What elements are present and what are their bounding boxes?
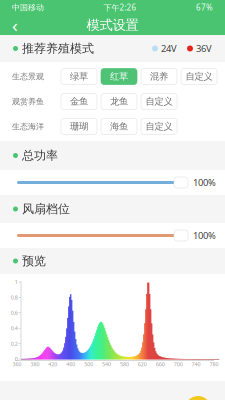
staticText: 1 [15, 278, 18, 286]
button[interactable]: 自定义 [141, 93, 177, 109]
staticText: 金鱼 [70, 96, 88, 107]
staticText: 模式设置 [86, 17, 138, 33]
staticText: 生态海洋 [12, 122, 44, 131]
staticText: 红草 [110, 71, 128, 82]
staticText: 生态景观 [12, 72, 44, 81]
staticText: 700 [174, 361, 183, 368]
staticText: 总功率 [22, 148, 58, 163]
staticText: 绿草 [70, 71, 88, 82]
staticText: 0.4 [11, 325, 18, 332]
staticText: 下午2:26 [103, 2, 136, 13]
staticText: 660 [156, 361, 165, 368]
staticText: 预览 [22, 254, 46, 268]
staticText: 龙鱼 [110, 96, 128, 107]
staticText: 自定义 [145, 96, 172, 107]
staticText: 0.6 [11, 309, 18, 316]
button[interactable]: 珊瑚 [61, 118, 97, 134]
staticText: 420 [48, 361, 57, 368]
staticText: 0 [15, 355, 18, 363]
staticText: 67% [196, 2, 213, 13]
staticText: 推荐养殖模式 [22, 41, 94, 56]
button[interactable]: 绿草 [61, 68, 97, 84]
button[interactable]: 自定义 [181, 68, 217, 84]
button[interactable]: 混养 [141, 68, 177, 84]
staticText: 24V [161, 42, 177, 55]
button[interactable]: Add [185, 396, 211, 400]
staticText: 100% [193, 176, 216, 189]
staticText: ‹ [12, 13, 18, 37]
staticText: 混养 [150, 71, 168, 82]
button[interactable]: 海鱼 [101, 118, 137, 134]
staticText: 中国移动 [12, 3, 44, 12]
staticText: 460 [66, 361, 75, 368]
button[interactable]: Back [0, 15, 30, 35]
staticText: 740 [192, 361, 201, 368]
button[interactable]: 自定义 [141, 118, 177, 134]
staticText: 36V [196, 42, 212, 55]
staticText: 珊瑚 [70, 121, 88, 132]
staticText: 360 [12, 361, 21, 368]
button[interactable]: 红草 [101, 68, 137, 84]
staticText: 自定义 [145, 121, 172, 132]
staticText: 780 [209, 361, 218, 368]
staticText: 0.8 [11, 294, 18, 301]
staticText: 620 [138, 361, 147, 368]
staticText: 自定义 [185, 71, 212, 82]
staticText: 580 [120, 361, 129, 368]
staticText: 100% [193, 229, 216, 242]
staticText: 0.2 [11, 340, 18, 347]
staticText: 观赏养鱼 [12, 97, 44, 106]
staticText: 540 [102, 361, 111, 368]
button[interactable]: 金鱼 [61, 93, 97, 109]
button[interactable]: 龙鱼 [101, 93, 137, 109]
staticText: 500 [84, 361, 93, 368]
staticText: 海鱼 [110, 121, 128, 132]
staticText: 380 [30, 361, 39, 368]
staticText: 风扇档位 [22, 202, 70, 216]
